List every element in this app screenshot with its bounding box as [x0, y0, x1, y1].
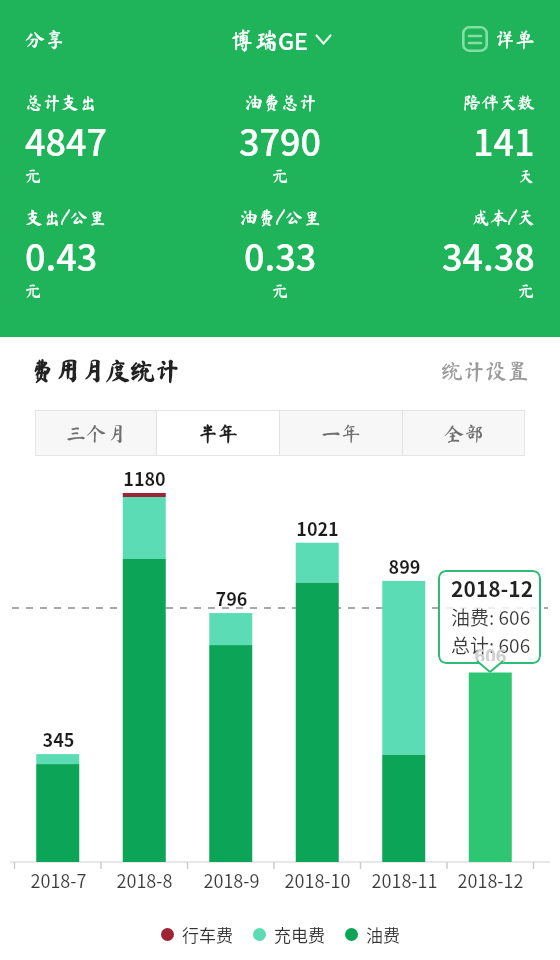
- button[interactable]: 统计设置: [441, 360, 530, 382]
- staticText: 899: [361, 553, 448, 579]
- button[interactable]: 行车费: [161, 922, 233, 947]
- staticText: 半年: [198, 423, 238, 443]
- button[interactable]: 详单: [462, 26, 535, 52]
- button[interactable]: 分享: [25, 29, 65, 49]
- staticText: 油费: 606: [451, 603, 531, 631]
- staticText: 2018-12: [447, 867, 534, 893]
- staticText: 1180: [101, 465, 188, 491]
- staticText: 油费总计: [245, 93, 317, 111]
- button[interactable]: 一年: [280, 410, 402, 456]
- staticText: 606: [447, 642, 534, 668]
- staticText: 博瑞: [230, 28, 278, 52]
- staticText: 2018-7: [15, 867, 102, 893]
- staticText: 2018-10: [274, 867, 361, 893]
- button[interactable]: 油费: [345, 922, 400, 947]
- staticText: 三个月: [66, 423, 126, 443]
- staticText: 3790: [239, 114, 322, 166]
- staticText: 2018-12: [451, 573, 534, 603]
- staticText: 345: [15, 726, 102, 752]
- staticText: 行车费: [182, 922, 233, 947]
- staticText: 总计支出: [25, 93, 97, 111]
- staticText: 充电费: [274, 922, 325, 947]
- staticText: 元: [272, 283, 289, 299]
- staticText: 一年: [321, 423, 361, 443]
- staticText: 34.38: [442, 229, 535, 281]
- button[interactable]: 博瑞: [230, 23, 331, 56]
- staticText: 全部: [444, 423, 484, 443]
- staticText: 141: [473, 114, 535, 166]
- button[interactable]: 半年: [157, 410, 279, 456]
- staticText: 油费/公里: [240, 208, 321, 226]
- staticText: 1021: [274, 515, 361, 541]
- staticText: 2018-8: [101, 867, 188, 893]
- staticText: 0.33: [244, 229, 317, 281]
- staticText: 总计: 606: [451, 631, 531, 659]
- staticText: 详单: [495, 29, 535, 49]
- staticText: 796: [188, 585, 275, 611]
- staticText: 油费: [366, 922, 400, 947]
- staticText: 2018-9: [188, 867, 275, 893]
- staticText: 支出/公里: [25, 208, 106, 226]
- staticText: 费用月度统计: [30, 358, 181, 383]
- button[interactable]: 三个月: [35, 410, 156, 456]
- staticText: 4847: [25, 114, 108, 166]
- staticText: 元: [518, 283, 535, 299]
- staticText: 陪伴天数: [463, 93, 535, 111]
- staticText: 成本/天: [472, 208, 535, 226]
- staticText: 元: [25, 283, 42, 299]
- staticText: GE: [278, 23, 308, 56]
- staticText: 元: [272, 168, 289, 184]
- button[interactable]: 全部: [403, 410, 525, 456]
- staticText: 天: [518, 168, 535, 184]
- button[interactable]: 充电费: [253, 922, 325, 947]
- staticText: 2018-11: [361, 867, 448, 893]
- staticText: 元: [25, 168, 42, 184]
- staticText: 0.43: [25, 229, 98, 281]
